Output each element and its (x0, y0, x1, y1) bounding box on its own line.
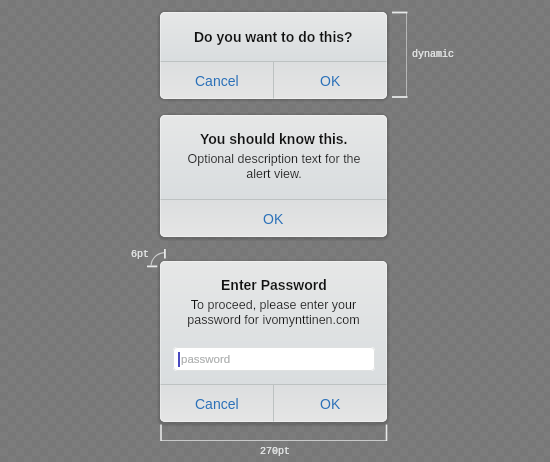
button[interactable]: password (173, 347, 375, 371)
staticText: You should know this. (200, 131, 348, 147)
staticText: password (181, 353, 231, 366)
staticText: OK (320, 73, 341, 89)
staticText: Optional description text for the alert … (187, 152, 361, 180)
button[interactable]: OK (160, 200, 387, 237)
staticText: dynamic (412, 49, 455, 60)
staticText: 6pt (131, 249, 150, 260)
staticText: To proceed, please enter your password f… (187, 298, 360, 326)
button[interactable]: Cancel (160, 385, 273, 422)
staticText: Do you want to do this? (194, 29, 353, 45)
button[interactable]: OK (274, 62, 387, 99)
button[interactable]: Cancel (160, 62, 273, 99)
staticText: 270pt (260, 446, 291, 457)
staticText: Cancel (195, 396, 239, 412)
staticText: OK (263, 211, 284, 227)
button[interactable]: OK (274, 385, 387, 422)
staticText: OK (320, 396, 341, 412)
staticText: Cancel (195, 73, 239, 89)
staticText: Enter Password (221, 277, 327, 293)
